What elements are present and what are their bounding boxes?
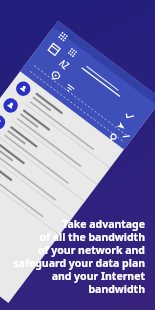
staticText: Take advantage of all the bandwidth of y…: [0, 217, 145, 296]
button[interactable]: Take advantage of all the bandwidth of y…: [0, 217, 149, 296]
